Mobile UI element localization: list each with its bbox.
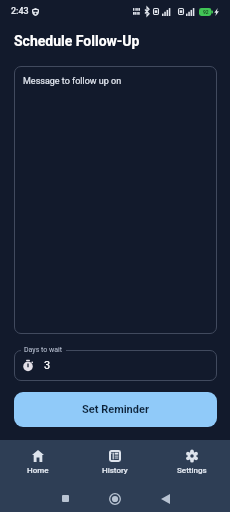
staticText: Home (27, 466, 49, 475)
staticText: 2:43 (11, 6, 29, 17)
button[interactable]: Message to follow up on (14, 66, 217, 334)
staticText: 92 (203, 9, 209, 15)
button[interactable]: Home (102, 485, 128, 512)
staticText: Message to follow up on (23, 76, 122, 87)
button[interactable]: Back (152, 485, 178, 512)
staticText: Set Reminder (82, 403, 149, 416)
staticText: Schedule Follow-Up (14, 33, 140, 49)
button[interactable]: Recent apps (52, 485, 78, 512)
button[interactable]: Home (0, 440, 76, 485)
button[interactable]: Set Reminder (14, 392, 217, 427)
button[interactable]: History (76, 440, 153, 485)
staticText: History (102, 466, 128, 475)
staticText: 3 (44, 359, 51, 372)
staticText: Settings (177, 466, 207, 475)
button[interactable]: Settings (153, 440, 230, 485)
button[interactable]: 3 (14, 350, 217, 381)
staticText: Days to wait (24, 346, 63, 354)
